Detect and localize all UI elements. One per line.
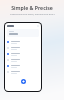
button[interactable]: Add bbox=[21, 79, 26, 84]
staticText: Everything you need, nothing you don't bbox=[10, 12, 55, 15]
staticText: Simple & Precise bbox=[11, 4, 53, 11]
